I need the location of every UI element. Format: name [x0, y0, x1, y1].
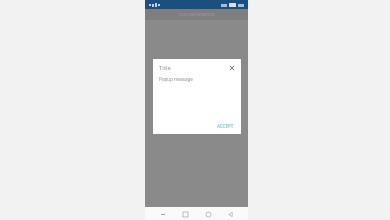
button[interactable]: Recents: [180, 209, 190, 219]
button[interactable]: Back: [225, 209, 235, 219]
staticText: Popup message: [159, 76, 193, 82]
button[interactable]: Close: [228, 64, 236, 72]
button[interactable]: Minimize: [158, 209, 168, 219]
button[interactable]: ACCEPT: [215, 122, 236, 130]
staticText: Title: [159, 64, 171, 72]
staticText: ACCEPT: [217, 123, 234, 129]
staticText: CUSTOM WINDOW: [179, 12, 215, 17]
button[interactable]: Home: [203, 209, 213, 219]
